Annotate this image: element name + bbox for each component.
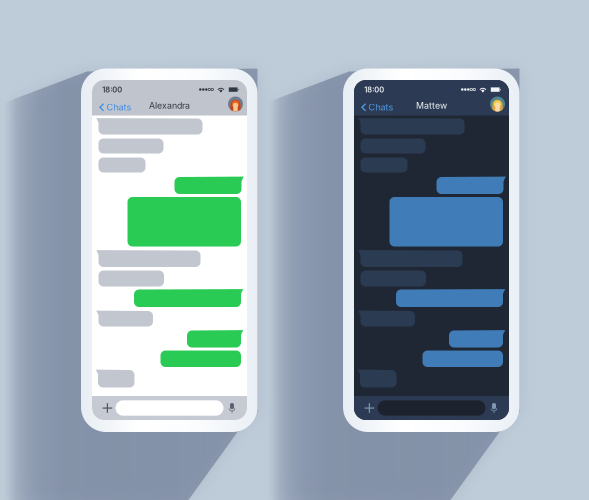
staticText: 18:00 — [364, 85, 384, 94]
button[interactable]: Message field — [377, 400, 485, 416]
button[interactable]: Add attachment — [100, 400, 115, 416]
staticText: Alexandra — [149, 100, 190, 111]
button[interactable]: Add attachment — [362, 400, 377, 416]
button[interactable]: Profile — [490, 96, 505, 111]
staticText: 18:00 — [102, 85, 122, 94]
button[interactable]: Chats — [96, 99, 134, 116]
button[interactable]: Message field — [115, 400, 223, 416]
button[interactable]: Voice message — [488, 400, 500, 416]
staticText: Chats — [368, 102, 393, 113]
staticText: Mattew — [416, 100, 447, 111]
button[interactable]: Chats — [358, 99, 396, 116]
button[interactable]: Voice message — [226, 400, 238, 416]
staticText: Chats — [106, 102, 131, 113]
button[interactable]: Profile — [228, 96, 243, 111]
